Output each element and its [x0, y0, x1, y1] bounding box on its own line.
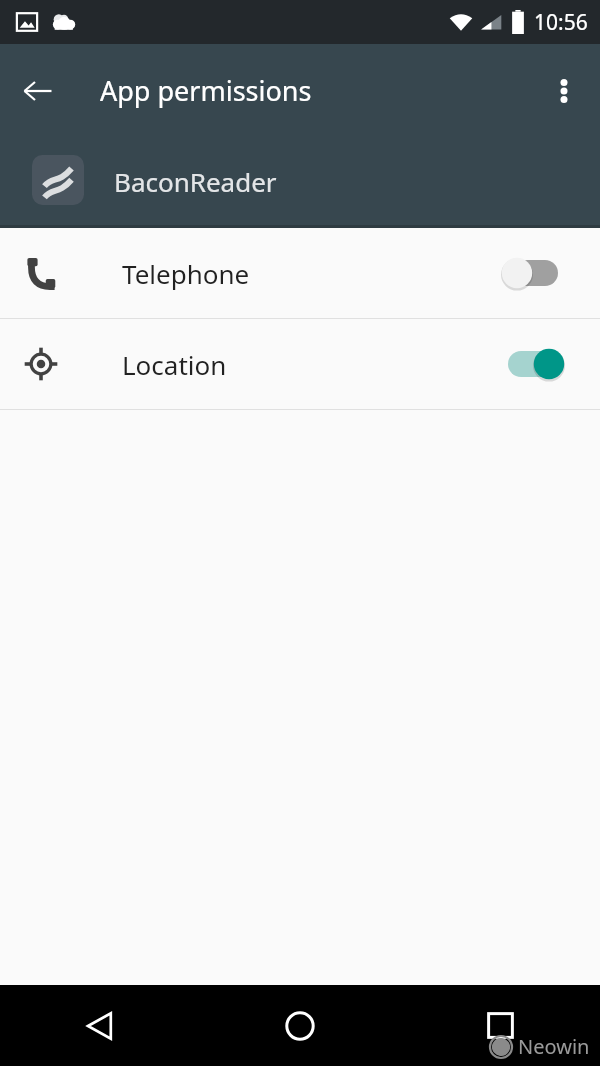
- button[interactable]: On: [494, 340, 572, 388]
- staticText: Neowin: [518, 1033, 590, 1060]
- staticText: App permissions: [100, 72, 312, 109]
- button[interactable]: Location: [0, 319, 600, 409]
- button[interactable]: Home: [200, 985, 400, 1066]
- button[interactable]: Off: [494, 249, 572, 297]
- staticText: 10:56: [534, 8, 588, 37]
- button[interactable]: Back: [0, 985, 200, 1066]
- button[interactable]: Recent apps: [400, 985, 600, 1066]
- button[interactable]: More options: [536, 63, 592, 119]
- button[interactable]: Telephone: [0, 228, 600, 318]
- button[interactable]: BaconReader: [0, 137, 600, 225]
- staticText: Telephone: [122, 256, 250, 291]
- staticText: Location: [122, 347, 227, 382]
- staticText: BaconReader: [114, 164, 277, 199]
- button[interactable]: Back: [10, 63, 66, 119]
